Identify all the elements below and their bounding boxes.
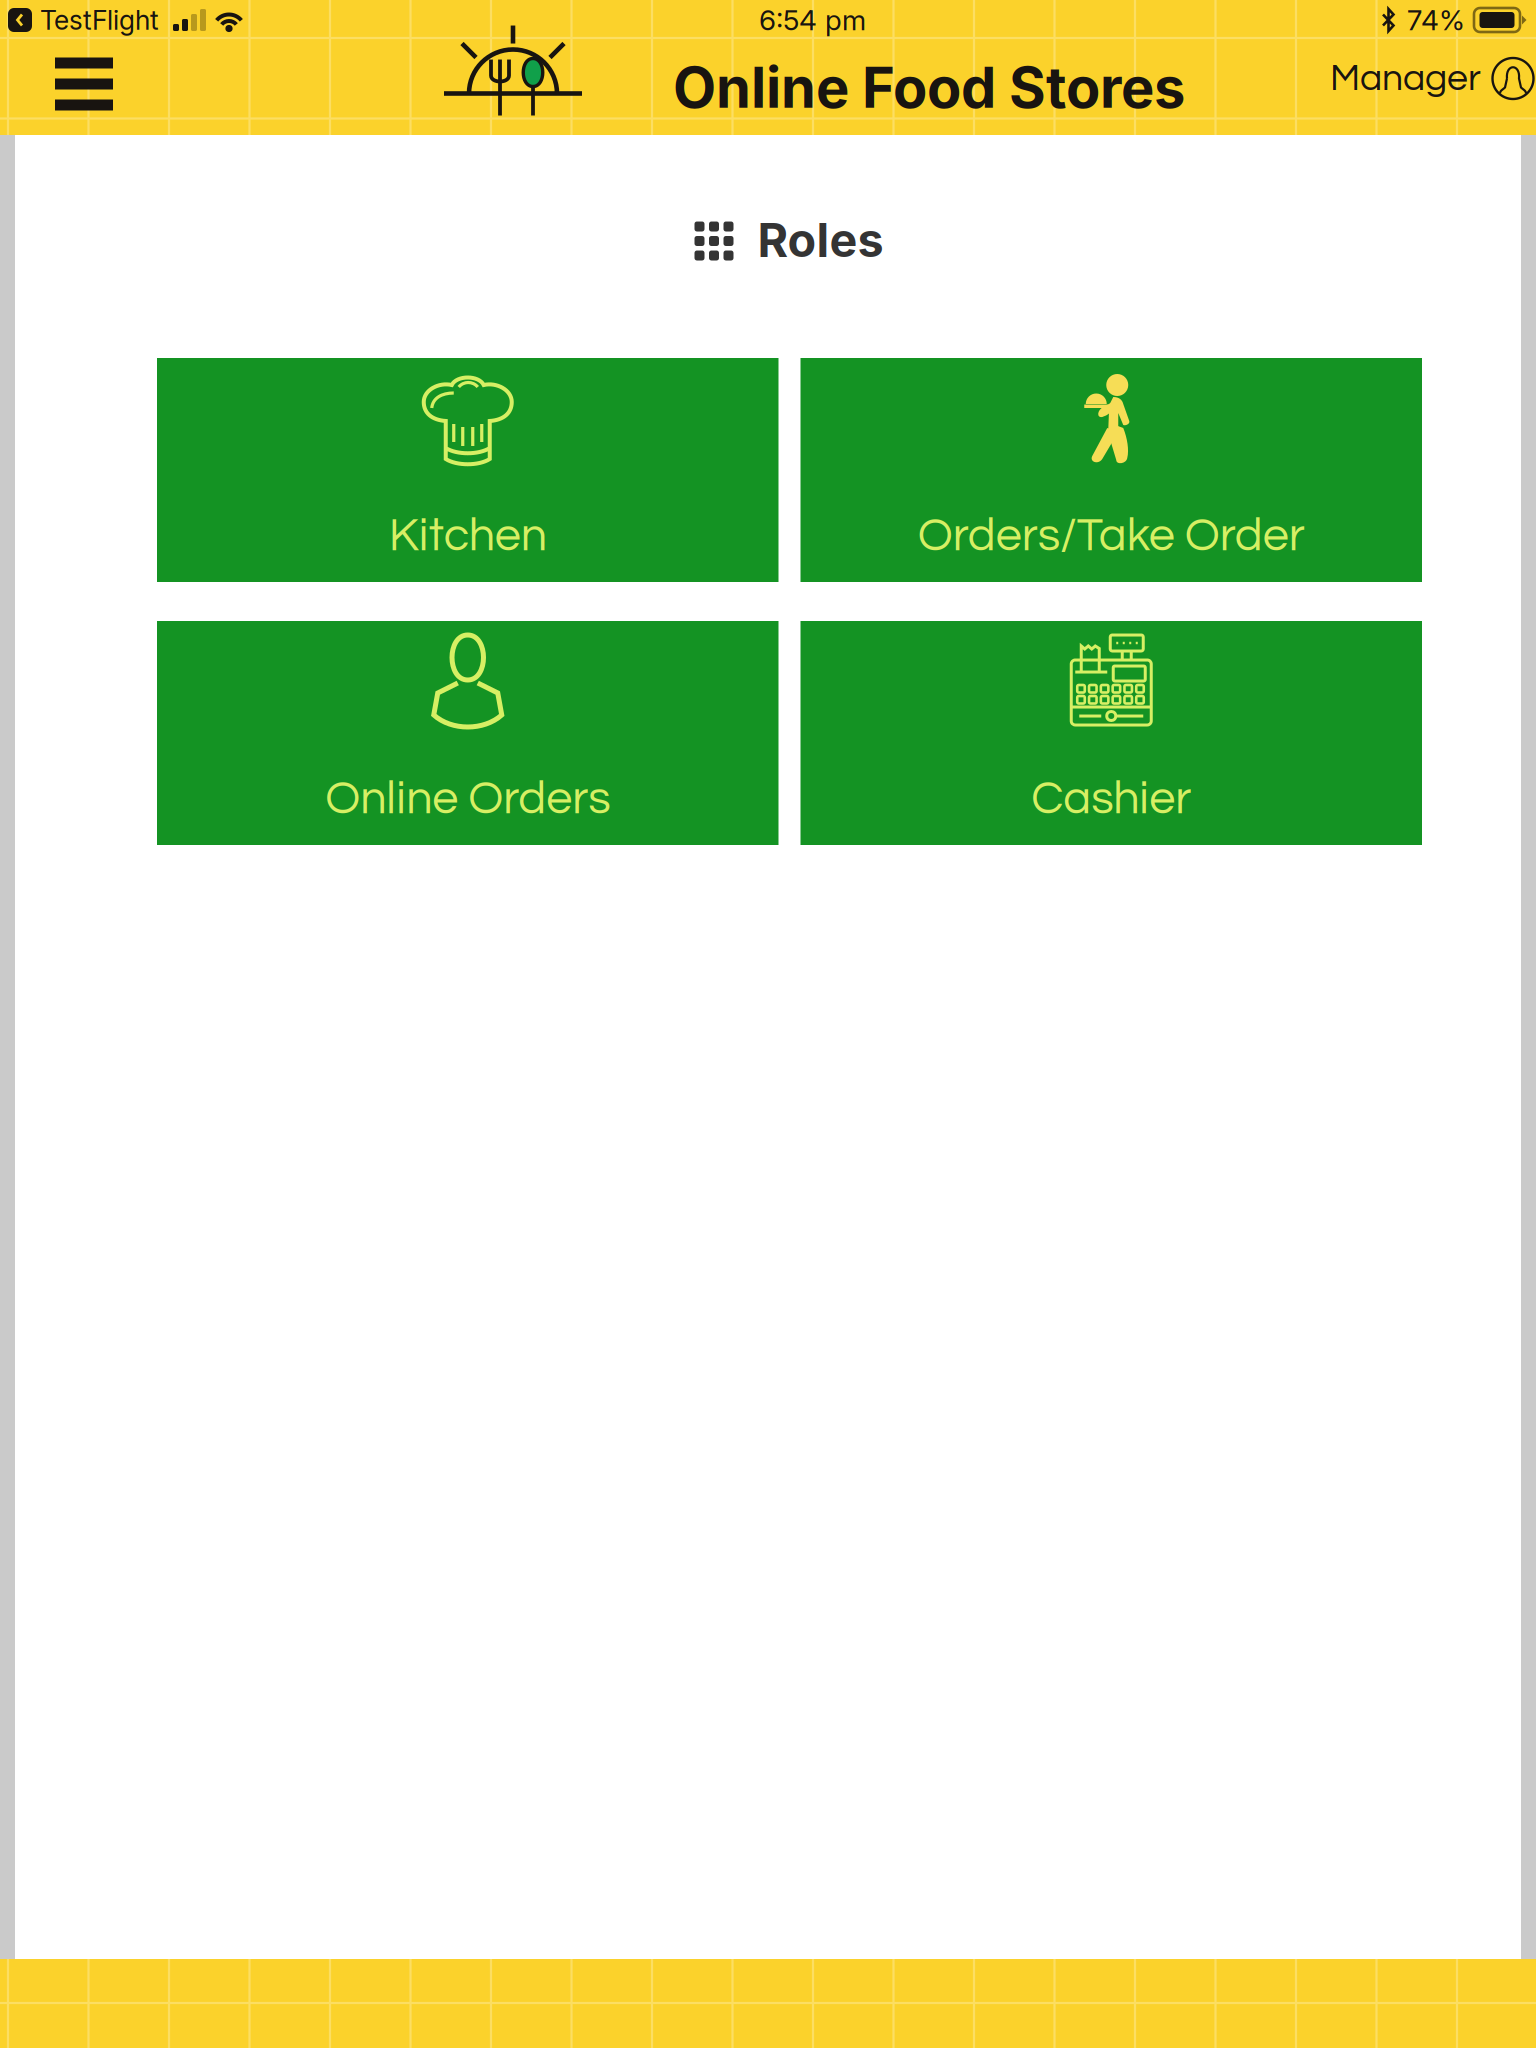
- staticText: Online Orders: [325, 775, 610, 823]
- staticText: Kitchen: [389, 512, 547, 560]
- staticText: Online Food Stores: [673, 53, 1185, 121]
- button[interactable]: Manager: [1324, 48, 1536, 108]
- button[interactable]: Back to TestFlight: [0, 0, 159, 40]
- button[interactable]: Cashier: [800, 621, 1422, 845]
- staticText: Roles: [757, 212, 883, 268]
- staticText: 6:54 pm: [759, 3, 866, 37]
- button[interactable]: Orders/Take Order: [800, 358, 1422, 582]
- staticText: Cashier: [1031, 775, 1191, 823]
- staticText: TestFlight: [40, 4, 159, 36]
- button[interactable]: Online Orders: [157, 621, 778, 845]
- button[interactable]: Menu: [29, 47, 139, 120]
- button[interactable]: Kitchen: [157, 358, 778, 582]
- staticText: 74%: [1407, 3, 1465, 37]
- staticText: Manager: [1330, 59, 1481, 98]
- staticText: Orders/Take Order: [918, 512, 1305, 560]
